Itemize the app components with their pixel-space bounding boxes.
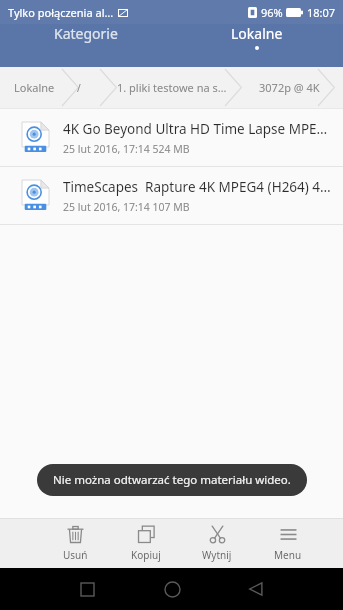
button[interactable]: Lokalne	[14, 80, 55, 95]
other: Menu	[279, 525, 298, 544]
button[interactable]: Usuń	[50, 525, 100, 562]
button[interactable]: 1. pliki testowe na s…	[117, 80, 227, 95]
staticText: Kategorie	[54, 24, 118, 43]
staticText: Nie można odtwarzać tego materiału wideo…	[53, 472, 291, 488]
staticText: Usuń	[63, 548, 88, 562]
other: Kopiuj	[137, 525, 156, 544]
staticText: 4K Go Beyond Ultra HD Time Lapse MPEG4…	[63, 120, 331, 138]
staticText: 96%	[261, 5, 283, 20]
button[interactable]: 3072p @ 4K	[259, 80, 320, 95]
button[interactable]: Wytnij	[192, 525, 242, 562]
staticText: Wytnij	[202, 548, 232, 562]
staticText: 18:07	[307, 5, 336, 20]
button[interactable]: Lokalne	[171, 24, 343, 50]
staticText: Kopiuj	[131, 548, 161, 562]
button[interactable]: Back	[239, 572, 273, 606]
button[interactable]: TimeScapes Rapture 4K MPEG4 (H264) 40…	[0, 167, 343, 224]
button[interactable]: Recents	[70, 572, 104, 606]
staticText: TimeScapes Rapture 4K MPEG4 (H264) 40…	[63, 178, 331, 196]
other: Wytnij	[208, 525, 227, 544]
button[interactable]: Menu	[263, 525, 313, 562]
button[interactable]: Kopiuj	[121, 525, 171, 562]
staticText: Menu	[274, 548, 302, 562]
button[interactable]: Home	[155, 572, 189, 606]
staticText: 25 lut 2016, 17:14 107 MB	[63, 200, 190, 214]
staticText: 25 lut 2016, 17:14 524 MB	[63, 142, 190, 156]
button[interactable]: Kategorie	[0, 24, 171, 50]
staticText: /	[77, 81, 81, 95]
other: Usuń	[66, 525, 85, 544]
button[interactable]: 4K Go Beyond Ultra HD Time Lapse MPEG4…	[0, 109, 343, 166]
staticText: Tylko połączenia al…	[8, 5, 114, 20]
staticText: Lokalne	[231, 24, 283, 43]
